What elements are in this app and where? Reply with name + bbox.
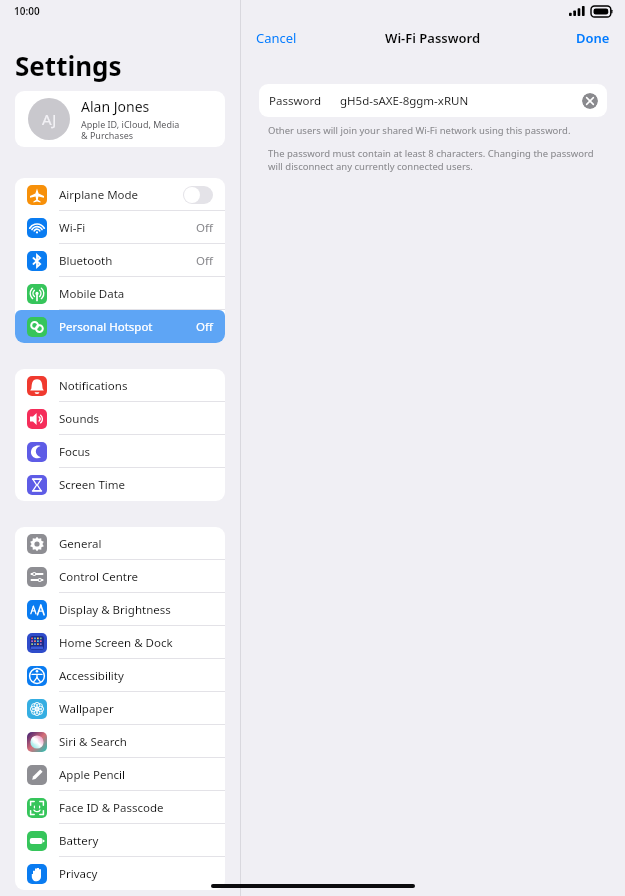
staticText: Apple Pencil bbox=[59, 767, 213, 783]
staticText: Other users will join your shared Wi-Fi … bbox=[268, 124, 571, 137]
button[interactable]: Face ID & Passcode bbox=[15, 791, 225, 824]
button[interactable]: Accessibility bbox=[15, 659, 225, 692]
button[interactable]: Airplane Mode toggle bbox=[183, 186, 213, 204]
button[interactable]: Battery bbox=[15, 824, 225, 857]
staticText: Wi-Fi Password bbox=[385, 29, 481, 47]
button[interactable]: Apple Pencil bbox=[15, 758, 225, 791]
button[interactable]: Sounds bbox=[15, 402, 225, 435]
button[interactable]: Home Screen & Dock bbox=[15, 626, 225, 659]
staticText: gH5d-sAXE-8ggm-xRUN bbox=[340, 93, 582, 109]
staticText: Wallpaper bbox=[59, 701, 213, 717]
button[interactable]: Bluetooth bbox=[15, 244, 225, 277]
staticText: Control Centre bbox=[59, 569, 213, 585]
staticText: Apple ID, iCloud, Media & Purchases bbox=[81, 118, 180, 141]
button[interactable]: AJ bbox=[15, 91, 225, 147]
button[interactable]: Display & Brightness bbox=[15, 593, 225, 626]
button[interactable]: Screen Time bbox=[15, 468, 225, 501]
staticText: Cancel bbox=[256, 29, 297, 47]
staticText: Home Screen & Dock bbox=[59, 635, 213, 651]
staticText: Personal Hotspot bbox=[59, 319, 196, 335]
staticText: Notifications bbox=[59, 378, 213, 394]
button[interactable]: Focus bbox=[15, 435, 225, 468]
button[interactable]: Notifications bbox=[15, 369, 225, 402]
staticText: Battery bbox=[59, 833, 213, 849]
staticText: Off bbox=[196, 319, 213, 335]
button[interactable]: Control Centre bbox=[15, 560, 225, 593]
staticText: AJ bbox=[42, 109, 57, 129]
button[interactable]: Airplane Mode bbox=[15, 178, 225, 211]
button[interactable]: Mobile Data bbox=[15, 277, 225, 310]
staticText: General bbox=[59, 536, 213, 552]
staticText: Password bbox=[269, 93, 322, 109]
staticText: Privacy bbox=[59, 866, 213, 882]
button[interactable]: Cancel bbox=[249, 25, 304, 51]
button[interactable]: Personal Hotspot bbox=[15, 310, 225, 343]
staticText: Off bbox=[196, 253, 213, 269]
staticText: Face ID & Passcode bbox=[59, 800, 213, 816]
staticText: The password must contain at least 8 cha… bbox=[268, 147, 598, 173]
staticText: Siri & Search bbox=[59, 734, 213, 750]
staticText: Display & Brightness bbox=[59, 602, 213, 618]
button[interactable]: Wi-Fi bbox=[15, 211, 225, 244]
button[interactable]: Siri & Search bbox=[15, 725, 225, 758]
staticText: Wi-Fi bbox=[59, 220, 196, 236]
button[interactable]: Wallpaper bbox=[15, 692, 225, 725]
staticText: Settings bbox=[15, 48, 122, 83]
button[interactable]: Clear password bbox=[582, 93, 598, 109]
button[interactable]: Privacy bbox=[15, 857, 225, 890]
staticText: 10:00 bbox=[14, 4, 40, 18]
staticText: Airplane Mode bbox=[59, 187, 183, 203]
staticText: Mobile Data bbox=[59, 286, 213, 302]
staticText: Screen Time bbox=[59, 477, 213, 493]
staticText: Accessibility bbox=[59, 668, 213, 684]
button[interactable]: General bbox=[15, 527, 225, 560]
button[interactable]: Password bbox=[259, 84, 607, 117]
staticText: Bluetooth bbox=[59, 253, 196, 269]
staticText: Done bbox=[576, 29, 610, 47]
staticText: Off bbox=[196, 220, 213, 236]
staticText: Focus bbox=[59, 444, 213, 460]
staticText: Sounds bbox=[59, 411, 213, 427]
staticText: Alan Jones bbox=[81, 97, 150, 116]
button[interactable]: Done bbox=[569, 25, 617, 51]
